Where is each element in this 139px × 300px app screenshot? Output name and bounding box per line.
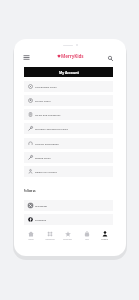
button[interactable]: Terms and Conditions bbox=[24, 109, 113, 120]
button[interactable]: Open navigation menu bbox=[21, 52, 32, 63]
staticText: Warranty and Returns Policy bbox=[35, 127, 69, 130]
button[interactable]: Contact Information bbox=[24, 138, 113, 149]
staticText: Cancellation Policy bbox=[35, 85, 57, 88]
staticText: Favourites bbox=[63, 238, 72, 240]
button[interactable]: Favourites bbox=[58, 228, 77, 244]
staticText: Categories bbox=[45, 238, 55, 240]
staticText: Home bbox=[28, 238, 34, 240]
button[interactable]: Cancellation Policy bbox=[24, 81, 113, 92]
staticText: Account bbox=[101, 238, 108, 240]
button[interactable]: My Account bbox=[24, 67, 113, 77]
button[interactable]: Delete My Account bbox=[24, 166, 113, 177]
button[interactable]: Account bbox=[95, 228, 114, 244]
button[interactable]: Cart bbox=[77, 228, 96, 244]
staticText: My Account bbox=[59, 70, 79, 75]
button[interactable]: Categories bbox=[40, 228, 59, 244]
button[interactable]: Search bbox=[105, 53, 116, 64]
staticText: Instagram bbox=[35, 204, 48, 207]
staticText: MerryKids bbox=[61, 53, 84, 59]
button[interactable]: Facebook bbox=[24, 214, 113, 225]
staticText: Cart bbox=[85, 238, 89, 240]
staticText: Terms and Conditions bbox=[35, 113, 61, 116]
staticText: Refund policy bbox=[35, 156, 51, 159]
staticText: Contact Information bbox=[35, 142, 59, 145]
button[interactable]: Home bbox=[21, 228, 40, 244]
button[interactable]: Refund policy bbox=[24, 152, 113, 163]
button[interactable]: Instagram bbox=[24, 200, 113, 211]
button[interactable]: Privacy Policy bbox=[24, 95, 113, 106]
staticText: Follow us bbox=[24, 189, 36, 192]
button[interactable]: Warranty and Returns Policy bbox=[24, 123, 113, 134]
staticText: Delete My Account bbox=[35, 170, 57, 173]
staticText: Privacy Policy bbox=[35, 99, 51, 102]
staticText: Facebook bbox=[35, 218, 47, 221]
